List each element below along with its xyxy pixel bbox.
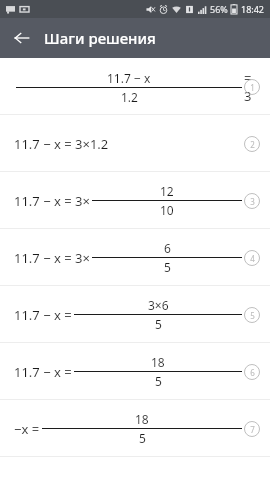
staticText: 4 [250, 253, 255, 264]
staticText: 3 [250, 196, 255, 207]
staticText: 5 [250, 310, 255, 321]
staticText: 6 [164, 240, 171, 256]
button[interactable]: 11.7 − x = 3× [0, 172, 270, 229]
staticText: 11.7 − x = 3× [14, 192, 90, 210]
staticText: 18:42 [241, 3, 265, 15]
staticText: 10 [160, 202, 174, 218]
button[interactable]: Назад [6, 22, 38, 54]
button[interactable]: 11.7 − x [0, 58, 270, 115]
staticText: 6 [250, 367, 255, 378]
staticText: 18 [135, 411, 149, 427]
staticText: 18 [151, 354, 165, 370]
button[interactable]: 11.7 − x = [0, 343, 270, 400]
staticText: 11.7 − x = [14, 306, 72, 324]
button[interactable]: 11.7 − x = 3× [0, 229, 270, 286]
staticText: 1.2 [121, 89, 138, 105]
staticText: 5 [139, 430, 146, 446]
staticText: 5 [155, 316, 162, 332]
staticText: 56% [210, 3, 228, 15]
staticText: 11.7 − x = 3× [14, 249, 90, 267]
staticText: Шаги решения [44, 28, 156, 48]
staticText: −x = [14, 420, 40, 438]
staticText: 3×6 [148, 297, 169, 313]
staticText: 2 [250, 139, 255, 150]
staticText: 5 [164, 259, 171, 275]
staticText: 1 [250, 82, 255, 93]
staticText: 7 [250, 424, 255, 435]
button[interactable]: 11.7 − x = [0, 286, 270, 343]
staticText: 11.7 − x [107, 70, 151, 86]
staticText: 12 [160, 183, 174, 199]
button[interactable]: 11.7 − x = 3×1.2 [0, 115, 270, 172]
staticText: 5 [155, 373, 162, 389]
staticText: 11.7 − x = [14, 363, 72, 381]
button[interactable]: −x = [0, 400, 270, 457]
staticText: 11.7 − x = 3×1.2 [14, 135, 109, 153]
